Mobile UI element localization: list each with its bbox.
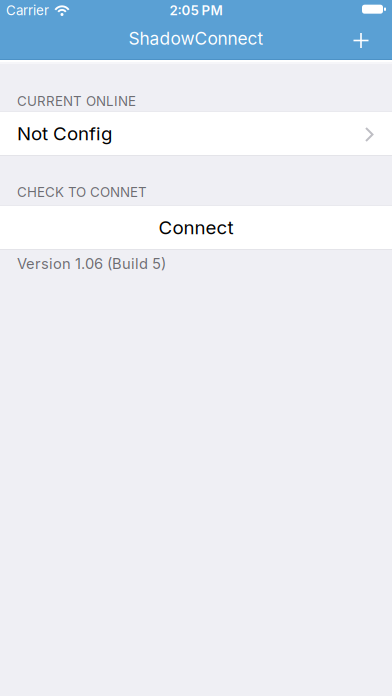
staticText: Carrier — [6, 3, 49, 18]
staticText: CHECK TO CONNET — [17, 184, 147, 200]
staticText: ShadowConnect — [128, 28, 263, 49]
staticText: Connect — [158, 216, 233, 238]
button[interactable]: Add — [339, 21, 383, 59]
button[interactable]: Connect — [0, 205, 392, 250]
button[interactable]: Not Config — [0, 111, 392, 156]
staticText: 2:05 PM — [169, 3, 222, 18]
staticText: Version 1.06 (Build 5) — [17, 255, 166, 272]
staticText: Not Config — [17, 122, 112, 144]
staticText: CURRENT ONLINE — [17, 93, 136, 109]
